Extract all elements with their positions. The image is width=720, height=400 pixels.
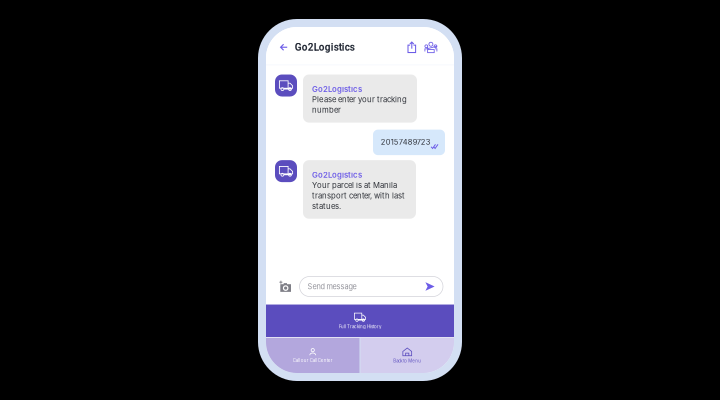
- button[interactable]: Share: [403, 37, 420, 57]
- button[interactable]: Call our Call Center: [266, 338, 359, 373]
- staticText: Go2Logistics: [295, 41, 355, 53]
- button[interactable]: Attach photo: [277, 280, 293, 292]
- staticText: Call our Call Center: [293, 358, 333, 363]
- button[interactable]: Back to Menu: [360, 338, 454, 373]
- staticText: Your parcel is at Manila transport cente…: [312, 180, 405, 211]
- staticText: Go2Logistics: [312, 170, 362, 179]
- staticText: 20157489723: [381, 138, 431, 147]
- button[interactable]: Back: [266, 37, 295, 58]
- staticText: Full Tracking History: [339, 324, 381, 329]
- staticText: Back to Menu: [393, 358, 421, 363]
- staticText: Send message: [307, 282, 356, 291]
- staticText: Go2Logistics: [312, 84, 362, 94]
- button[interactable]: Participants: [420, 37, 441, 57]
- staticText: Please enter your tracking number: [312, 95, 407, 115]
- button[interactable]: Full Tracking History: [266, 304, 454, 337]
